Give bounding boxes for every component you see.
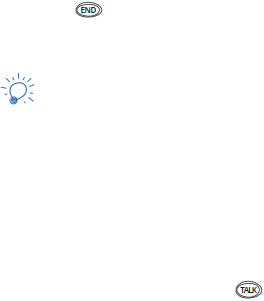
button[interactable]: END <box>75 2 102 18</box>
button[interactable]: TALK <box>235 281 262 299</box>
staticText: END <box>80 5 96 15</box>
staticText: TALK <box>240 285 257 295</box>
